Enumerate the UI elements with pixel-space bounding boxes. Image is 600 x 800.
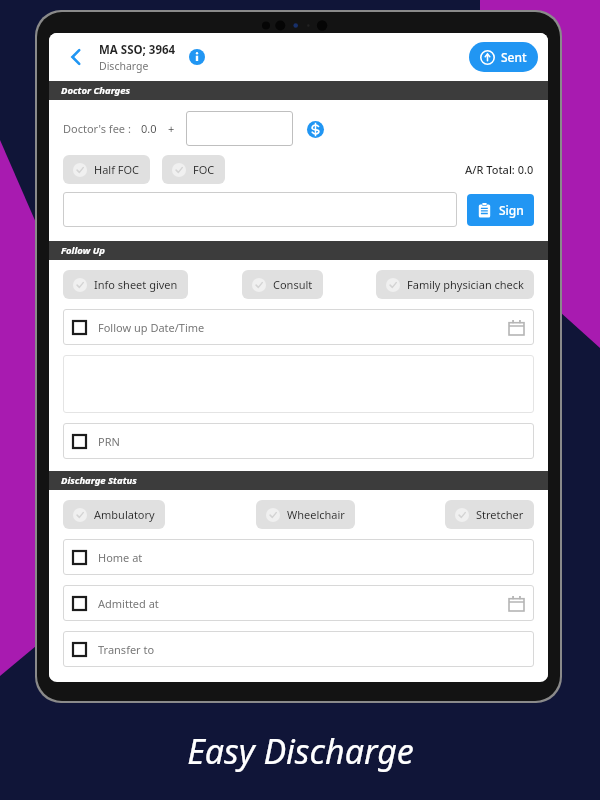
button[interactable]: Consult bbox=[242, 270, 323, 299]
staticText: Follow up Date/Time bbox=[98, 320, 205, 335]
staticText: FOC bbox=[193, 162, 215, 177]
button[interactable]: Home at bbox=[63, 539, 534, 575]
button[interactable]: FOC bbox=[162, 155, 225, 184]
button[interactable] bbox=[186, 111, 293, 146]
staticText: Consult bbox=[273, 277, 313, 292]
button[interactable]: PRN bbox=[63, 423, 534, 459]
button[interactable]: Sent bbox=[469, 42, 538, 72]
button[interactable]: Transfer to bbox=[63, 631, 534, 667]
staticText: + bbox=[168, 121, 175, 136]
button[interactable]: Stretcher bbox=[445, 500, 534, 529]
staticText: Follow Up bbox=[61, 244, 105, 257]
button[interactable]: Info bbox=[186, 46, 208, 68]
staticText: Half FOC bbox=[94, 162, 140, 177]
button[interactable]: Info sheet given bbox=[63, 270, 188, 299]
button[interactable] bbox=[63, 192, 457, 227]
staticText: Stretcher bbox=[476, 507, 524, 522]
button[interactable]: Half FOC bbox=[63, 155, 150, 184]
staticText: Discharge bbox=[99, 59, 149, 73]
staticText: Transfer to bbox=[98, 642, 155, 657]
button[interactable]: Follow up Date/Time bbox=[63, 309, 534, 345]
staticText: Doctor's fee : bbox=[63, 121, 131, 136]
staticText: Sign bbox=[499, 202, 524, 218]
staticText: Easy Discharge bbox=[187, 728, 414, 774]
staticText: Info sheet given bbox=[94, 277, 178, 292]
staticText: Family physician check bbox=[407, 277, 524, 292]
other: Pick date bbox=[509, 320, 524, 335]
button[interactable]: Admitted at bbox=[63, 585, 534, 621]
button[interactable]: Ambulatory bbox=[63, 500, 165, 529]
button[interactable]: Wheelchair bbox=[256, 500, 355, 529]
staticText: Doctor Charges bbox=[61, 84, 131, 97]
staticText: Home at bbox=[98, 550, 143, 565]
staticText: Discharge Status bbox=[61, 474, 137, 487]
staticText: MA SSO; 3964 bbox=[99, 42, 176, 58]
staticText: 0.0 bbox=[141, 121, 157, 136]
button[interactable]: Currency bbox=[304, 118, 326, 140]
staticText: PRN bbox=[98, 434, 120, 449]
button[interactable] bbox=[63, 355, 534, 413]
staticText: Ambulatory bbox=[94, 507, 155, 522]
button[interactable]: Back bbox=[59, 40, 93, 74]
staticText: Admitted at bbox=[98, 596, 159, 611]
staticText: A/R Total: 0.0 bbox=[465, 162, 534, 177]
staticText: Wheelchair bbox=[287, 507, 345, 522]
button[interactable]: Sign bbox=[467, 194, 534, 226]
other: Pick date bbox=[509, 596, 524, 611]
staticText: Sent bbox=[501, 49, 527, 65]
button[interactable]: Family physician check bbox=[376, 270, 534, 299]
